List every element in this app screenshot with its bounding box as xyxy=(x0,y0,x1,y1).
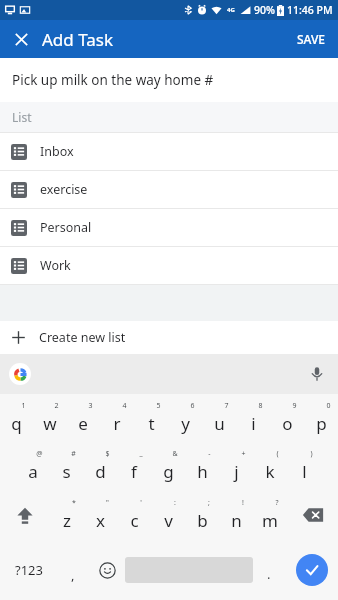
staticText: ! xyxy=(242,498,244,508)
button[interactable]: SAVE xyxy=(291,25,332,53)
button[interactable]: Shift xyxy=(0,490,50,540)
staticText: e xyxy=(78,412,88,435)
button[interactable]: 7 xyxy=(202,394,236,442)
staticText: k xyxy=(265,460,275,483)
staticText: - xyxy=(208,449,211,459)
button[interactable]: Space xyxy=(125,540,253,600)
button[interactable]: Create new list xyxy=(0,321,338,354)
button[interactable]: Period xyxy=(253,540,285,600)
staticText: 90% xyxy=(254,3,275,17)
button[interactable]: 4 xyxy=(100,394,134,442)
button[interactable]: * xyxy=(50,490,83,540)
staticText: 11:46 PM xyxy=(287,3,333,17)
staticText: , xyxy=(71,566,75,584)
staticText: y xyxy=(181,412,190,435)
button[interactable]: : xyxy=(151,490,185,540)
staticText: x xyxy=(96,509,105,532)
staticText: 8 xyxy=(258,401,263,411)
staticText: Create new list xyxy=(39,329,126,346)
staticText: w xyxy=(43,412,57,435)
staticText: q xyxy=(11,412,22,435)
staticText: p xyxy=(316,412,327,435)
staticText: m xyxy=(262,509,278,532)
button[interactable]: + xyxy=(219,442,253,490)
button[interactable]: 9 xyxy=(270,394,304,442)
staticText: 5 xyxy=(156,401,161,411)
staticText: . xyxy=(267,565,271,583)
staticText: & xyxy=(172,449,178,459)
button[interactable]: Personal xyxy=(0,209,338,246)
button[interactable]: - xyxy=(185,442,219,490)
staticText: u xyxy=(214,412,225,435)
button[interactable]: 1 xyxy=(0,394,33,442)
button[interactable]: Voice input xyxy=(306,363,328,385)
button[interactable]: Work xyxy=(0,247,338,284)
staticText: 4 xyxy=(122,401,127,411)
staticText: g xyxy=(163,460,174,483)
staticText: Inbox xyxy=(40,143,74,160)
staticText: _ xyxy=(139,449,143,459)
staticText: i xyxy=(251,412,256,435)
staticText: 3 xyxy=(88,401,93,411)
staticText: 2 xyxy=(54,401,59,411)
staticText: 1 xyxy=(21,401,26,411)
staticText: ? xyxy=(275,498,279,508)
staticText: ( xyxy=(276,449,279,459)
staticText: ?123 xyxy=(15,561,43,579)
button[interactable]: Comma xyxy=(57,540,89,600)
staticText: " xyxy=(106,498,109,508)
button[interactable]: 3 xyxy=(66,394,100,442)
button[interactable]: 6 xyxy=(168,394,202,442)
button[interactable]: Backspace xyxy=(287,490,338,540)
button[interactable]: Google xyxy=(8,362,32,386)
button[interactable]: 0 xyxy=(304,394,338,442)
button[interactable]: _ xyxy=(117,442,151,490)
staticText: v xyxy=(164,509,173,532)
staticText: : xyxy=(174,498,176,508)
staticText: ; xyxy=(208,498,210,508)
button[interactable]: ? xyxy=(253,490,287,540)
staticText: ) xyxy=(310,449,313,459)
staticText: List xyxy=(12,109,32,125)
button[interactable]: ' xyxy=(117,490,151,540)
button[interactable]: Pick up milk on the way home # xyxy=(0,58,338,102)
button[interactable]: ; xyxy=(185,490,219,540)
staticText: n xyxy=(231,509,242,532)
staticText: Work xyxy=(40,257,71,274)
staticText: h xyxy=(197,460,208,483)
button[interactable]: Close xyxy=(6,24,36,54)
button[interactable]: $ xyxy=(83,442,117,490)
button[interactable]: Emoji xyxy=(89,540,125,600)
staticText: 4G xyxy=(227,6,235,14)
staticText: SAVE xyxy=(297,31,326,47)
button[interactable]: ! xyxy=(219,490,253,540)
staticText: 0 xyxy=(326,401,331,411)
staticText: 9 xyxy=(292,401,297,411)
button[interactable]: 8 xyxy=(236,394,270,442)
button[interactable]: ) xyxy=(287,442,321,490)
button[interactable]: # xyxy=(49,442,83,490)
button[interactable]: ?123 xyxy=(0,540,57,600)
staticText: r xyxy=(113,412,121,435)
staticText: + xyxy=(241,449,246,459)
button[interactable]: " xyxy=(83,490,117,540)
button[interactable]: ( xyxy=(253,442,287,490)
button[interactable]: Enter xyxy=(285,540,338,600)
staticText: z xyxy=(63,509,71,532)
staticText: d xyxy=(95,460,106,483)
staticText: o xyxy=(282,412,293,435)
staticText: j xyxy=(234,460,239,483)
button[interactable]: & xyxy=(151,442,185,490)
staticText: $ xyxy=(105,449,110,459)
staticText: c xyxy=(130,509,139,532)
staticText: l xyxy=(302,460,307,483)
staticText: f xyxy=(131,460,137,483)
staticText: b xyxy=(197,509,208,532)
button[interactable]: 2 xyxy=(33,394,66,442)
staticText: @ xyxy=(36,449,43,459)
button[interactable]: 5 xyxy=(134,394,168,442)
staticText: ' xyxy=(140,498,142,508)
button[interactable]: exercise xyxy=(0,171,338,208)
button[interactable]: @ xyxy=(16,442,49,490)
button[interactable]: Inbox xyxy=(0,133,338,170)
